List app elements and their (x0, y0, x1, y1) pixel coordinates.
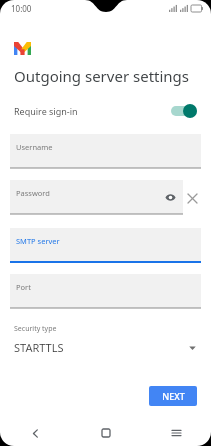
button[interactable]: Password (10, 180, 183, 216)
staticText: Require sign-in (14, 105, 78, 117)
button[interactable]: Security type (0, 324, 211, 355)
button[interactable]: Clear (183, 189, 201, 207)
button[interactable]: Require sign-in toggle (171, 104, 197, 118)
button[interactable]: Recent apps (141, 420, 211, 446)
button[interactable]: Home (71, 420, 141, 446)
button[interactable]: Username (10, 134, 201, 170)
button[interactable]: SMTP server (10, 228, 201, 264)
button[interactable]: NEXT (149, 386, 197, 406)
button[interactable]: Show password (163, 190, 177, 204)
staticText: Port (16, 282, 31, 292)
staticText: Outgoing server settings (14, 66, 190, 86)
staticText: NEXT (162, 390, 185, 402)
staticText: Password (16, 188, 50, 198)
staticText: STARTTLS (14, 340, 64, 355)
button[interactable]: Back (0, 420, 71, 446)
staticText: SMTP server (16, 236, 60, 246)
button[interactable]: Port (10, 274, 201, 310)
staticText: Security type (14, 324, 57, 334)
staticText: Username (16, 142, 53, 152)
button[interactable]: Require sign-in (0, 98, 211, 124)
staticText: 10:00 (11, 3, 32, 14)
